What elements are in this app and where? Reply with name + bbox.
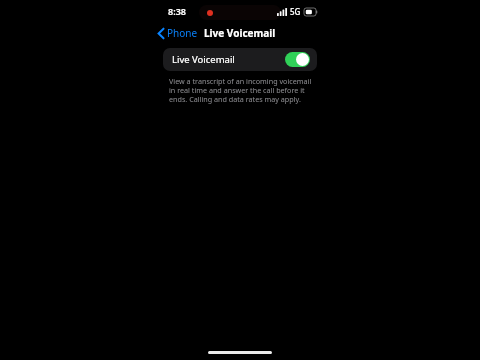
staticText: 5G bbox=[290, 6, 301, 17]
staticText: Phone bbox=[167, 26, 198, 40]
button[interactable]: Phone bbox=[154, 23, 202, 43]
staticText: Live Voicemail bbox=[204, 26, 276, 40]
staticText: View a transcript of an incoming voicema… bbox=[169, 76, 314, 105]
staticText: Live Voicemail bbox=[172, 53, 235, 66]
staticText: 8:38 bbox=[168, 5, 186, 17]
button[interactable]: Live Voicemail bbox=[163, 48, 317, 71]
button[interactable]: Live Voicemail toggle, on bbox=[285, 52, 310, 67]
